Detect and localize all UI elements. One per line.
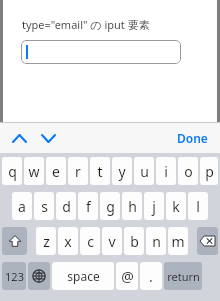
staticText: space (67, 268, 100, 284)
button[interactable]: p (200, 157, 218, 185)
staticText: t (97, 162, 103, 181)
button[interactable]: t (90, 157, 110, 185)
staticText: v (108, 232, 116, 251)
button[interactable]: d (56, 192, 76, 220)
button[interactable]: z (36, 227, 56, 255)
button[interactable]: . (140, 262, 162, 290)
button[interactable]: s (34, 192, 54, 220)
button[interactable]: b (124, 227, 144, 255)
staticText: n (152, 232, 161, 251)
staticText: b (130, 232, 139, 251)
button[interactable]: q (2, 157, 22, 185)
button[interactable]: l (188, 192, 208, 220)
staticText: u (140, 162, 149, 181)
staticText: w (28, 162, 40, 181)
staticText: l (196, 197, 200, 216)
button[interactable]: j (144, 192, 164, 220)
staticText: i (164, 162, 168, 181)
button[interactable]: e (46, 157, 66, 185)
staticText: g (106, 197, 115, 216)
button[interactable]: v (102, 227, 122, 255)
staticText: type="email" の iput 要素 (22, 17, 150, 32)
staticText: r (75, 162, 81, 181)
staticText: d (62, 197, 71, 216)
staticText: Done (177, 130, 208, 146)
button[interactable]: return (164, 262, 202, 290)
button[interactable]: space (52, 262, 114, 290)
button[interactable]: x (58, 227, 78, 255)
staticText: x (64, 232, 72, 251)
button[interactable]: 123 (2, 262, 26, 290)
button[interactable]: a (12, 192, 32, 220)
button[interactable]: Shift (2, 227, 27, 255)
staticText: o (184, 162, 193, 181)
staticText: f (86, 197, 91, 216)
button[interactable]: k (166, 192, 186, 220)
staticText: q (8, 162, 17, 181)
button[interactable]: Change keyboard (28, 262, 50, 290)
button[interactable]: m (168, 227, 188, 255)
button[interactable]: r (68, 157, 88, 185)
button[interactable]: y (112, 157, 132, 185)
staticText: k (172, 197, 180, 216)
staticText: p (205, 162, 214, 181)
staticText: s (41, 197, 48, 216)
button[interactable]: i (156, 157, 176, 185)
button[interactable]: Previous field (8, 126, 30, 150)
button[interactable]: c (80, 227, 100, 255)
staticText: e (52, 162, 60, 181)
staticText: j (152, 197, 156, 216)
button[interactable]: Next field (37, 126, 59, 150)
staticText: a (18, 197, 26, 216)
staticText: z (43, 232, 50, 251)
button[interactable]: f (78, 192, 98, 220)
button[interactable]: @ (116, 262, 138, 290)
staticText: @ (121, 267, 134, 286)
button[interactable]: w (24, 157, 44, 185)
button[interactable]: h (122, 192, 142, 220)
button[interactable]: Done (173, 126, 212, 150)
staticText: m (171, 232, 185, 251)
button[interactable]: Delete (197, 227, 218, 255)
button[interactable]: u (134, 157, 154, 185)
staticText: h (128, 197, 137, 216)
staticText: 123 (5, 269, 24, 284)
button[interactable]: o (178, 157, 198, 185)
button[interactable]: g (100, 192, 120, 220)
button[interactable]: n (146, 227, 166, 255)
staticText: y (118, 162, 126, 181)
staticText: c (87, 232, 94, 251)
staticText: return (167, 269, 200, 284)
button[interactable] (21, 40, 181, 64)
staticText: . (149, 267, 153, 286)
